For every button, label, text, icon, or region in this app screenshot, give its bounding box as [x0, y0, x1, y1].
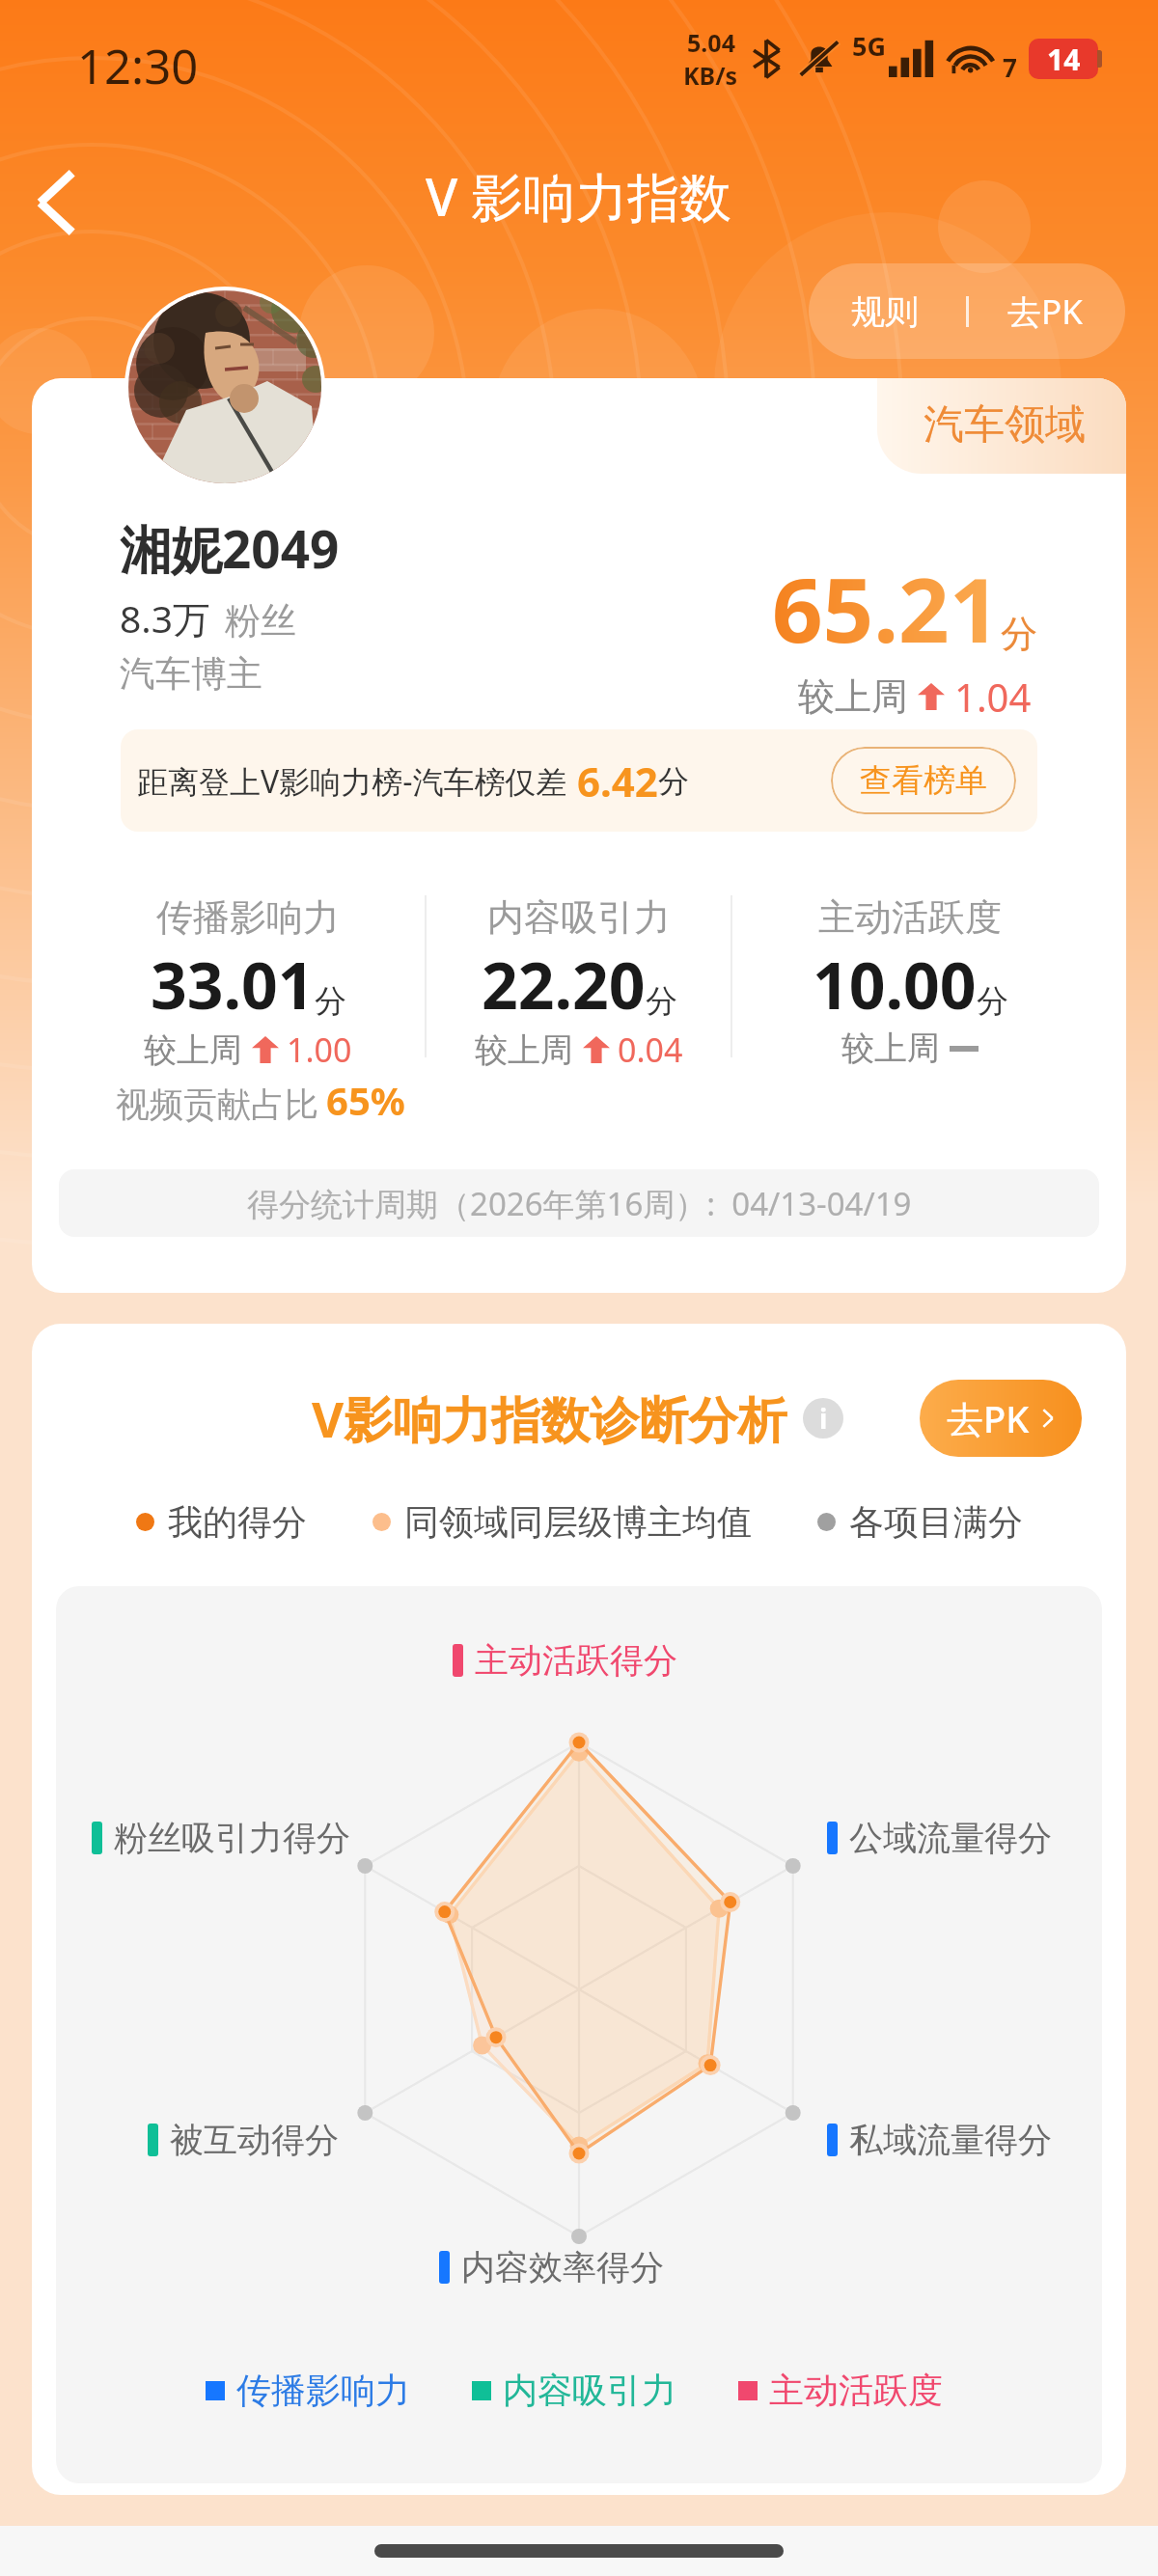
staticText: 规则 [851, 290, 919, 333]
staticText: 10.00 [813, 941, 977, 1028]
staticText: i [819, 1400, 828, 1437]
staticText: 65% [326, 1074, 405, 1126]
staticText: 主动活跃度 [818, 894, 1002, 941]
staticText: 去PK [1007, 288, 1083, 335]
staticText: 6.42 [577, 754, 658, 808]
staticText: 分 [646, 981, 677, 1022]
staticText: 65.21 [772, 548, 1001, 669]
staticText: 0.04 [618, 1028, 683, 1072]
staticText: 分 [315, 981, 346, 1022]
staticText: 粉丝吸引力得分 [114, 1817, 350, 1859]
staticText: 公域流量得分 [849, 1817, 1052, 1859]
staticText: 分 [1001, 611, 1037, 657]
staticText: 33.01 [151, 941, 315, 1028]
staticText: 视频贡献占比 [116, 1083, 318, 1126]
staticText: 湘妮2049 [120, 513, 340, 583]
staticText: 查看榜单 [860, 760, 987, 801]
staticText: 传播影响力 [236, 2369, 410, 2412]
staticText: 22.20 [482, 941, 646, 1028]
staticText: 1.04 [954, 671, 1032, 723]
staticText: 我的得分 [168, 1500, 307, 1544]
staticText: 7 [1003, 50, 1017, 84]
staticText: 8.3万 [120, 592, 211, 644]
staticText: 粉丝 [225, 598, 296, 644]
staticText: 内容吸引力 [487, 894, 671, 941]
button[interactable]: Info [803, 1398, 843, 1439]
staticText: 传播影响力 [156, 894, 340, 941]
staticText: 去PK [947, 1393, 1030, 1443]
staticText: 较上周 [798, 673, 908, 720]
staticText: 较上周 [475, 1029, 573, 1071]
staticText: 同领域同层级博主均值 [404, 1500, 752, 1544]
staticText: 分 [658, 762, 689, 801]
button[interactable]: 查看榜单 [831, 747, 1016, 814]
button[interactable]: Back [5, 151, 107, 254]
staticText: 私域流量得分 [849, 2119, 1052, 2161]
staticText: 主动活跃得分 [475, 1639, 677, 1682]
staticText: KB/s [683, 59, 738, 92]
staticText: 5G [852, 28, 886, 64]
staticText: 1.00 [287, 1028, 352, 1072]
staticText: 主动活跃度 [769, 2369, 943, 2412]
staticText: 较上周 [144, 1029, 242, 1071]
staticText: 5.04 [687, 26, 735, 59]
staticText: 12:30 [77, 34, 199, 98]
staticText: 得分统计周期（2026年第16周）: 04/13-04/19 [247, 1182, 912, 1225]
staticText: 分 [977, 981, 1008, 1022]
staticText: 较上周 [841, 1028, 940, 1069]
staticText: 被互动得分 [170, 2119, 339, 2161]
button[interactable]: 去PK [920, 1380, 1082, 1457]
staticText: 内容效率得分 [461, 2246, 664, 2288]
staticText: 内容吸引力 [503, 2369, 676, 2412]
staticText: 14 [1047, 40, 1081, 79]
staticText: 各项目满分 [849, 1500, 1023, 1544]
staticText: V影响力指数诊断分析 [312, 1384, 787, 1452]
staticText: V 影响力指数 [426, 160, 732, 232]
button[interactable]: 规则 [809, 263, 1125, 359]
staticText: 汽车博主 [120, 651, 262, 697]
staticText: 汽车领域 [924, 399, 1086, 451]
staticText: 距离登上V影响力榜-汽车榜仅差 [137, 760, 567, 803]
